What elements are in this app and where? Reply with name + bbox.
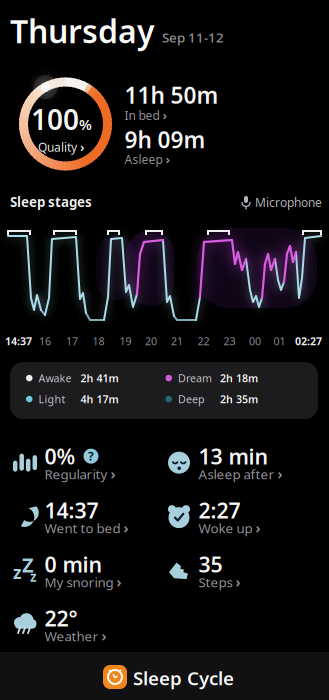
button[interactable]: 14:37: [10, 496, 128, 537]
staticText: 2h 41m: [80, 371, 118, 385]
staticText: Sleep Cycle: [133, 665, 234, 690]
staticText: 2:27: [198, 496, 240, 524]
staticText: Dream: [178, 371, 212, 385]
staticText: 02:27: [295, 334, 322, 348]
button[interactable]: 35: [164, 550, 240, 591]
staticText: Quality ›: [38, 138, 85, 155]
staticText: Steps ›: [198, 572, 240, 591]
staticText: z: [30, 568, 37, 585]
button[interactable]: 9h 09m: [124, 124, 205, 155]
button[interactable]: In bed ›: [124, 106, 167, 124]
button[interactable]: 22°: [10, 604, 106, 645]
staticText: In bed ›: [124, 106, 167, 124]
staticText: Deep: [178, 392, 205, 406]
staticText: Sep 11-12: [162, 28, 224, 46]
button[interactable]: Sleep Cycle: [0, 652, 329, 700]
staticText: Thursday: [10, 9, 155, 52]
staticText: Weather ›: [44, 626, 106, 645]
staticText: 9h 09m: [124, 124, 205, 155]
staticText: Awake: [38, 371, 71, 385]
staticText: Sleep stages: [10, 193, 92, 211]
staticText: My snoring ›: [44, 572, 121, 591]
staticText: 22°: [44, 604, 77, 632]
staticText: 17: [66, 334, 78, 348]
staticText: Asleep ›: [124, 150, 170, 168]
button[interactable]: 0%: [10, 442, 115, 483]
staticText: 11h 50m: [124, 80, 218, 110]
staticText: Went to bed ›: [44, 518, 128, 537]
staticText: 35: [198, 550, 222, 578]
staticText: Woke up ›: [198, 518, 260, 537]
staticText: 2h 18m: [220, 371, 258, 385]
staticText: Z: [22, 551, 34, 578]
staticText: 22: [197, 334, 209, 348]
staticText: ?: [88, 448, 94, 464]
staticText: 00: [249, 334, 261, 348]
button[interactable]: 13 min: [164, 442, 282, 483]
staticText: 14:37: [44, 496, 98, 524]
staticText: 20: [145, 334, 157, 348]
staticText: Light: [38, 392, 65, 406]
staticText: 14:37: [5, 334, 32, 348]
button[interactable]: Asleep ›: [124, 150, 170, 168]
staticText: 100%: [31, 101, 92, 138]
staticText: Microphone: [255, 194, 322, 210]
staticText: 2h 35m: [220, 392, 258, 406]
staticText: 23: [223, 334, 235, 348]
button[interactable]: 2:27: [164, 496, 260, 537]
staticText: 0 min: [44, 550, 102, 578]
staticText: Regularity ›: [44, 464, 115, 483]
staticText: 0%: [44, 442, 75, 470]
button[interactable]: z: [10, 550, 121, 591]
button[interactable]: 11h 50m: [124, 80, 218, 110]
staticText: 4h 17m: [80, 392, 118, 406]
staticText: Asleep after ›: [198, 464, 282, 483]
staticText: z: [13, 561, 22, 584]
staticText: 13 min: [198, 442, 268, 470]
staticText: 21: [171, 334, 183, 348]
staticText: 16: [39, 334, 51, 348]
button[interactable]: Microphone: [241, 194, 322, 210]
button[interactable]: 100%: [31, 101, 92, 155]
staticText: 01: [273, 334, 285, 348]
staticText: 19: [119, 334, 131, 348]
staticText: 18: [92, 334, 104, 348]
